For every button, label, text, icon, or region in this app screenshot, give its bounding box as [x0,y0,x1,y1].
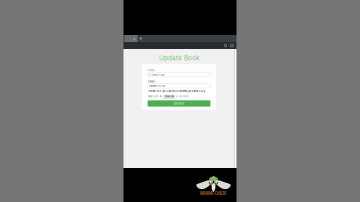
staticText: Current File: uploads/Books/news_update8… [148,90,206,93]
button[interactable]: Search [222,42,228,49]
staticText: Choose File [165,95,174,98]
staticText: Title [148,69,154,72]
staticText: Upload New File: [148,95,163,98]
button[interactable]: Choose File [164,95,174,98]
staticText: × [133,36,136,41]
button[interactable]: Update [148,100,210,107]
button[interactable]: Menu [228,42,235,49]
staticText: + [139,35,143,42]
staticText: A Dark Affair [149,73,165,76]
button[interactable]: New tab [137,35,144,42]
button[interactable]: Browser tab [124,35,137,42]
staticText: Lashaun Hooks [149,84,165,87]
staticText: No file chosen [176,95,189,98]
staticText: MIAMI-DADE [200,191,227,196]
staticText: Author [148,80,156,83]
staticText: Update [173,102,184,105]
staticText: Update Book [159,54,199,62]
